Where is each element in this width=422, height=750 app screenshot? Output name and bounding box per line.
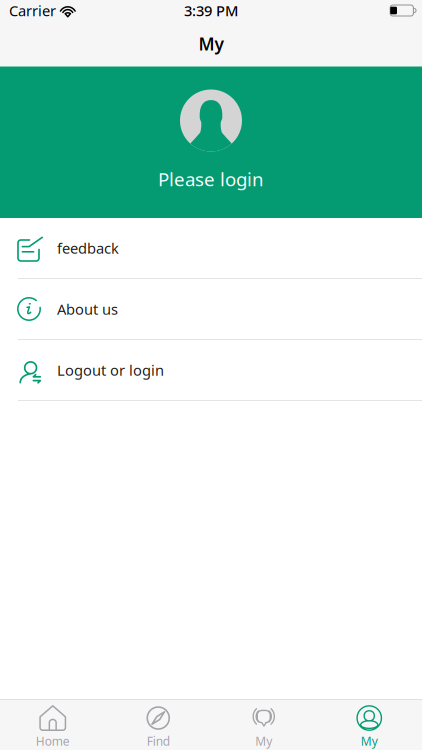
button[interactable]: feedback (0, 218, 422, 279)
button[interactable]: About us (0, 279, 422, 340)
staticText: 3:39 PM (184, 1, 238, 20)
button[interactable]: My (316, 698, 422, 750)
staticText: My (361, 733, 378, 749)
staticText: Carrier (9, 1, 56, 20)
staticText: Find (147, 733, 170, 749)
staticText: Logout or login (57, 360, 164, 380)
button[interactable]: My (211, 698, 316, 750)
staticText: About us (57, 299, 118, 319)
staticText: Home (36, 733, 70, 749)
staticText: My (255, 733, 272, 749)
button[interactable]: Find (105, 698, 211, 750)
button[interactable]: Logout or login (0, 340, 422, 401)
staticText: feedback (57, 238, 119, 258)
staticText: Please login (158, 166, 264, 191)
staticText: My (198, 32, 223, 55)
button[interactable]: Home (0, 698, 105, 750)
